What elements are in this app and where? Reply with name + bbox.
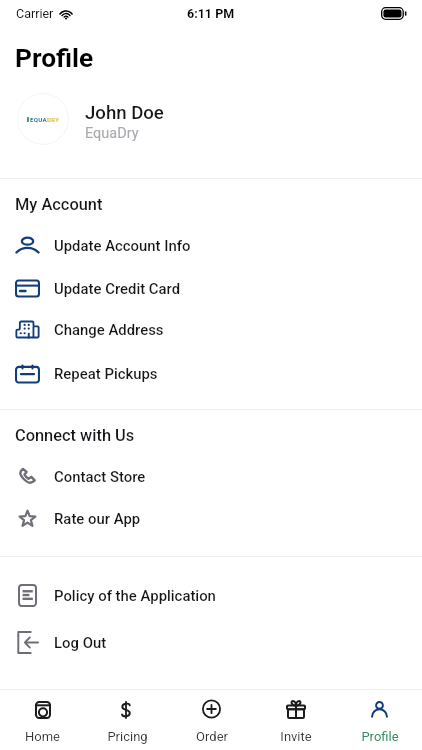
staticText: Repeat Pickups bbox=[54, 365, 158, 382]
staticText: Contact Store bbox=[54, 468, 146, 485]
button[interactable]: Contact Store bbox=[0, 455, 422, 497]
staticText: Update Account Info bbox=[54, 237, 191, 254]
button[interactable]: Pricing bbox=[85, 690, 170, 750]
staticText: Change Address bbox=[54, 321, 164, 338]
button[interactable]: Profile bbox=[338, 690, 422, 750]
staticText: My Account bbox=[15, 195, 103, 214]
staticText: 6:11 PM bbox=[187, 6, 235, 21]
staticText: Invite bbox=[280, 729, 312, 744]
staticText: Log Out bbox=[54, 634, 107, 651]
button[interactable]: Repeat Pickups bbox=[0, 352, 422, 394]
button[interactable]: Rate our App bbox=[0, 497, 422, 539]
staticText: Pricing bbox=[107, 729, 148, 744]
staticText: Policy of the Application bbox=[54, 587, 216, 604]
staticText: Update Credit Card bbox=[54, 280, 181, 297]
button[interactable]: Invite bbox=[254, 690, 338, 750]
staticText: Profile bbox=[361, 729, 399, 744]
button[interactable]: Update Credit Card bbox=[0, 267, 422, 309]
staticText: Rate our App bbox=[54, 510, 141, 527]
button[interactable]: Update Account Info bbox=[0, 224, 422, 266]
staticText: DRY bbox=[47, 116, 60, 123]
button[interactable]: EQUA bbox=[0, 90, 422, 148]
staticText: Carrier bbox=[16, 6, 54, 21]
button[interactable]: Home bbox=[0, 690, 85, 750]
staticText: Order bbox=[196, 729, 228, 744]
button[interactable]: Order bbox=[170, 690, 254, 750]
staticText: EQUA bbox=[30, 116, 47, 123]
staticText: Profile bbox=[15, 43, 94, 74]
staticText: EquaDry bbox=[85, 125, 139, 142]
staticText: Home bbox=[25, 729, 60, 744]
staticText: Connect with Us bbox=[15, 426, 135, 445]
staticText: John Doe bbox=[85, 102, 164, 124]
button[interactable]: Policy of the Application bbox=[0, 574, 422, 616]
button[interactable]: Log Out bbox=[0, 621, 422, 663]
button[interactable]: Change Address bbox=[0, 308, 422, 350]
